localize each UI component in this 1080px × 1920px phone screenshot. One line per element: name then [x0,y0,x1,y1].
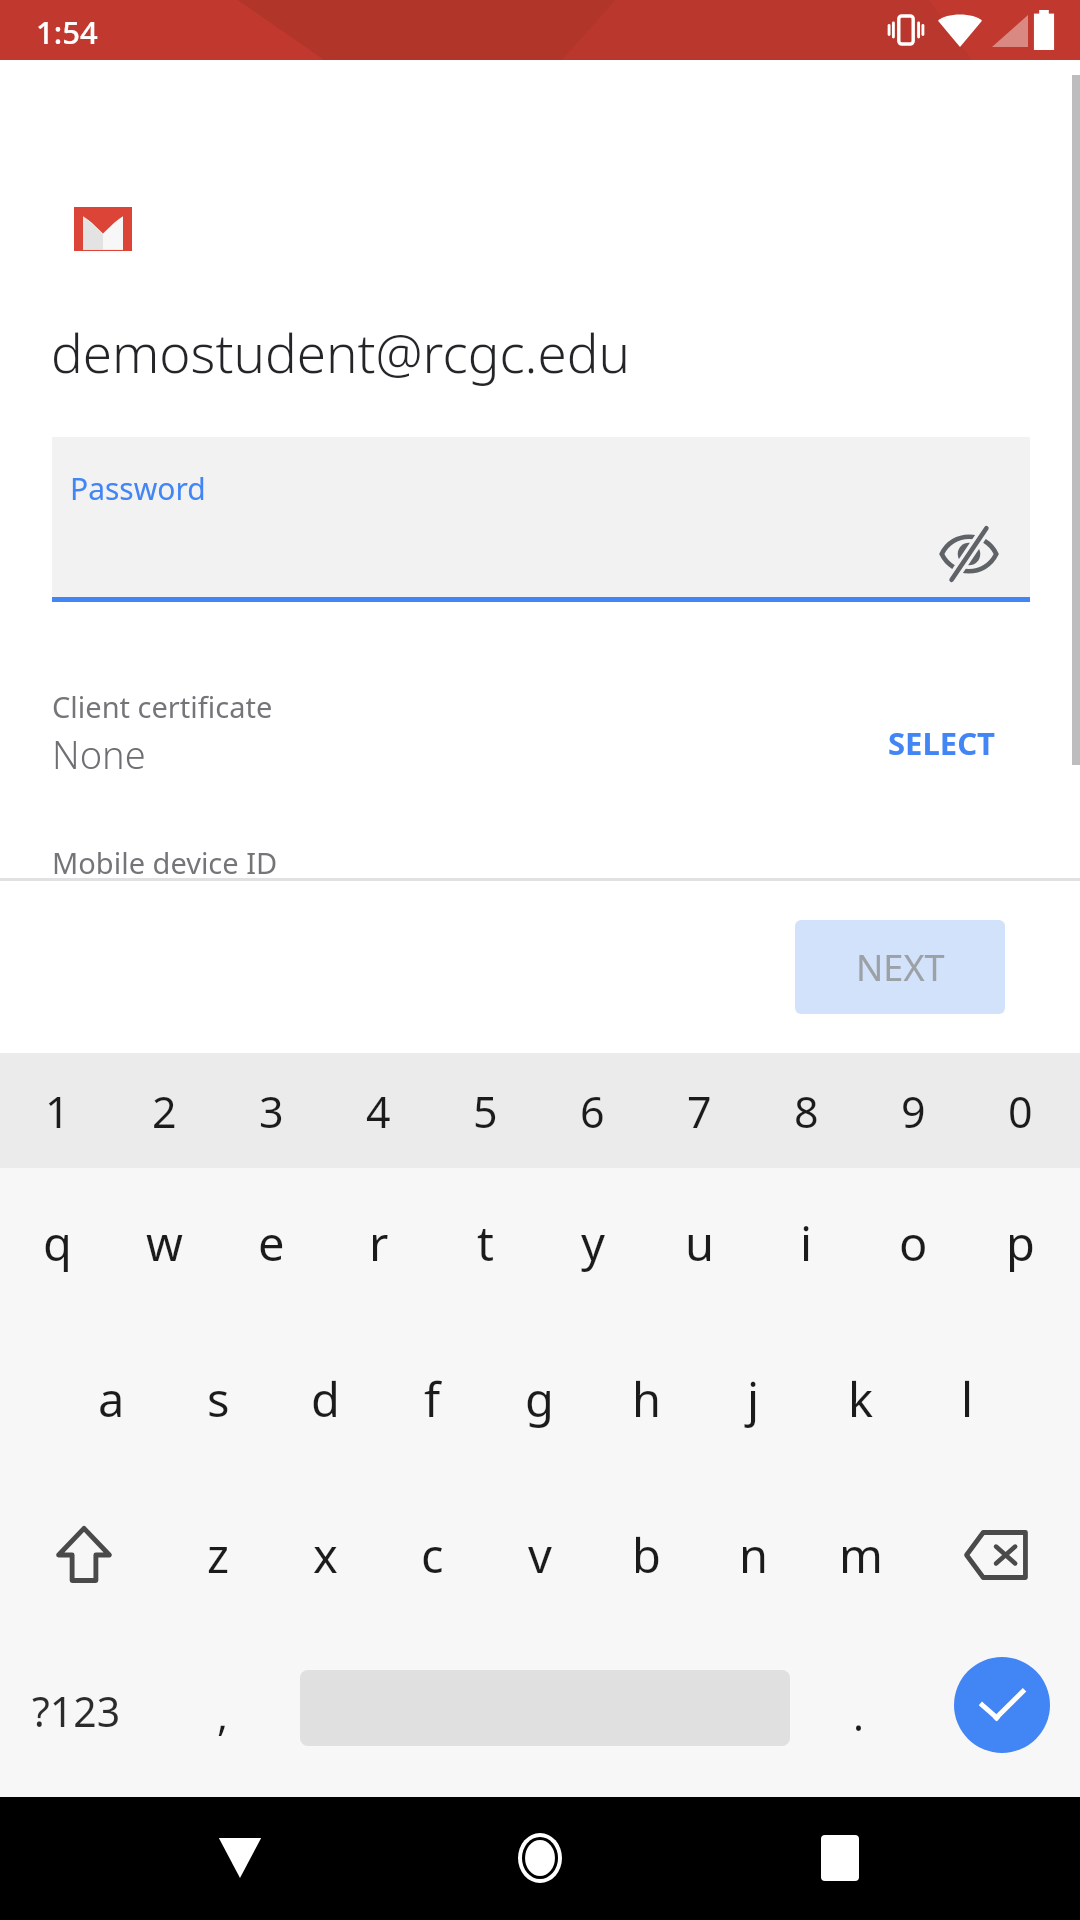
button[interactable]: 9 [860,1054,967,1169]
button[interactable]: 7 [646,1054,753,1169]
button[interactable]: 6 [539,1054,646,1169]
staticText: o [899,1211,928,1275]
staticText: y [581,1211,605,1275]
button[interactable]: , [172,1641,272,1789]
button[interactable]: i [753,1169,860,1317]
button[interactable]: 5 [432,1054,539,1169]
staticText: 1:54 [36,11,98,53]
staticText: q [43,1211,72,1275]
button[interactable]: l [914,1325,1021,1473]
button[interactable]: Backspace [922,1481,1070,1629]
staticText: a [98,1367,125,1431]
button[interactable]: Client certificate [0,660,1080,782]
staticText: t [477,1211,494,1275]
staticText: 1 [45,1082,70,1141]
staticText: 0 [1008,1082,1033,1141]
staticText: x [313,1523,338,1587]
staticText: z [207,1523,230,1587]
staticText: Mobile device ID [52,843,278,882]
button[interactable]: q [4,1169,111,1317]
button[interactable]: o [860,1169,967,1317]
button[interactable]: f [379,1325,486,1473]
staticText: 6 [580,1082,605,1141]
button[interactable]: Back [180,1808,300,1908]
button[interactable]: 3 [218,1054,325,1169]
staticText: 8 [794,1082,819,1141]
button[interactable]: 4 [325,1054,432,1169]
staticText: 7 [687,1082,712,1141]
button[interactable]: Recent apps [780,1808,900,1908]
button[interactable]: u [646,1169,753,1317]
staticText: e [258,1211,285,1275]
staticText: demostudent@rcgc.edu [51,316,631,388]
staticText: j [747,1367,760,1431]
button[interactable]: Password [52,437,1030,600]
staticText: SELECT [888,722,995,764]
button[interactable]: x [272,1481,379,1629]
button[interactable]: h [593,1325,700,1473]
button[interactable]: Done [954,1657,1050,1753]
staticText: d [311,1367,340,1431]
staticText: l [961,1367,974,1431]
button[interactable]: ?123 [0,1637,152,1785]
button[interactable]: b [593,1481,700,1629]
button[interactable]: g [486,1325,593,1473]
staticText: . [853,1687,864,1743]
button[interactable]: 0 [967,1054,1074,1169]
staticText: b [632,1523,661,1587]
staticText: i [800,1211,813,1275]
staticText: 5 [473,1082,498,1141]
staticText: c [421,1523,444,1587]
button[interactable]: s [165,1325,272,1473]
staticText: 2 [152,1082,177,1141]
button[interactable]: w [111,1169,218,1317]
button[interactable]: 2 [111,1054,218,1169]
button[interactable]: j [700,1325,807,1473]
staticText: k [848,1367,874,1431]
button[interactable]: k [807,1325,914,1473]
button[interactable]: Shift [10,1481,158,1629]
staticText: p [1006,1211,1035,1275]
button[interactable]: z [165,1481,272,1629]
button[interactable]: r [325,1169,432,1317]
button[interactable]: y [539,1169,646,1317]
button[interactable]: t [432,1169,539,1317]
staticText: u [685,1211,715,1275]
staticText: f [424,1367,441,1431]
button[interactable]: Home [480,1808,600,1908]
staticText: m [839,1523,883,1587]
staticText: w [146,1211,183,1275]
staticText: Password [70,468,206,509]
staticText: r [369,1211,389,1275]
staticText: 9 [901,1082,926,1141]
staticText: h [632,1367,662,1431]
staticText: s [207,1367,230,1431]
button[interactable]: NEXT [795,920,1005,1014]
button[interactable]: a [58,1325,165,1473]
button[interactable]: n [700,1481,807,1629]
button[interactable]: 1 [4,1054,111,1169]
staticText: NEXT [856,943,945,992]
button[interactable]: v [486,1481,593,1629]
button[interactable]: p [967,1169,1074,1317]
button[interactable]: Show password [928,513,1010,595]
staticText: v [528,1523,552,1587]
button[interactable]: 8 [753,1054,860,1169]
button[interactable]: SELECT [888,714,1040,772]
button[interactable]: e [218,1169,325,1317]
button[interactable]: c [379,1481,486,1629]
staticText: , [217,1687,228,1743]
button[interactable]: d [272,1325,379,1473]
button[interactable]: m [807,1481,914,1629]
staticText: 3 [259,1082,284,1141]
staticText: ?123 [32,1683,121,1739]
button[interactable]: . [808,1641,908,1789]
staticText: Client certificate [52,687,273,726]
staticText: 4 [366,1082,391,1141]
staticText: None [52,728,146,780]
staticText: n [739,1523,769,1587]
staticText: g [525,1367,554,1431]
